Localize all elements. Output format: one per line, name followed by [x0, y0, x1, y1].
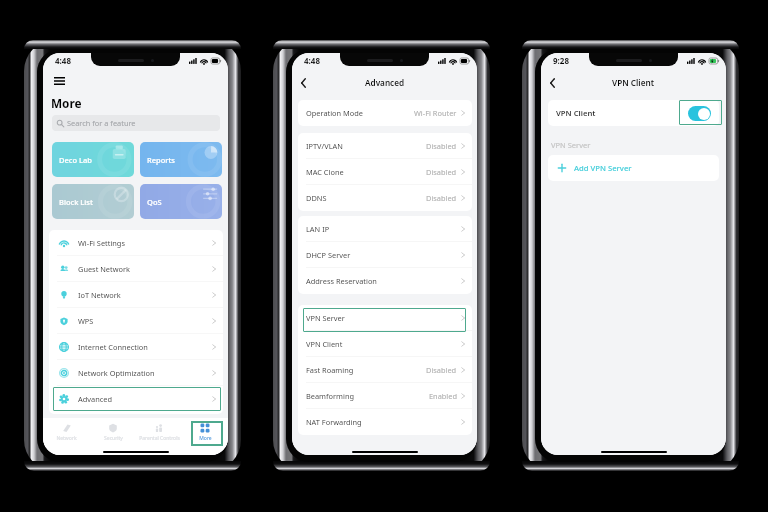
- staticText: DDNS: [306, 193, 327, 203]
- button[interactable]: DHCP Server: [298, 242, 472, 268]
- staticText: Advanced: [78, 394, 112, 404]
- staticText: 4:48: [55, 55, 71, 66]
- button[interactable]: IoT Network: [49, 282, 223, 308]
- staticText: Disabled: [426, 167, 457, 177]
- staticText: MAC Clone: [306, 167, 344, 177]
- button[interactable]: Network Optimization: [49, 360, 223, 386]
- staticText: NAT Forwarding: [306, 417, 362, 427]
- button[interactable]: Fast Roaming: [298, 357, 472, 383]
- button[interactable]: Security: [90, 418, 136, 446]
- staticText: Disabled: [426, 141, 457, 151]
- button[interactable]: Network: [43, 418, 90, 446]
- staticText: Advanced: [365, 77, 405, 88]
- staticText: Security: [104, 435, 123, 442]
- staticText: WPS: [78, 316, 94, 326]
- staticText: VPN Server: [306, 313, 345, 323]
- staticText: Operation Mode: [306, 108, 363, 118]
- button[interactable]: VPN Client toggle: [688, 106, 711, 121]
- staticText: Network Optimization: [78, 368, 155, 378]
- button[interactable]: LAN IP: [298, 216, 472, 242]
- staticText: Address Reservation: [306, 276, 377, 286]
- staticText: Disabled: [426, 193, 457, 203]
- staticText: More: [199, 435, 212, 442]
- button[interactable]: VPN Server: [298, 305, 472, 331]
- button[interactable]: Beamforming: [298, 383, 472, 409]
- button[interactable]: DDNS: [298, 185, 472, 211]
- staticText: QoS: [147, 197, 162, 207]
- button[interactable]: Deco Lab: [52, 142, 134, 177]
- button[interactable]: IPTV/VLAN: [298, 133, 472, 159]
- staticText: VPN Client: [306, 339, 343, 349]
- staticText: Network: [56, 435, 77, 442]
- staticText: Enabled: [429, 391, 457, 401]
- staticText: Disabled: [426, 365, 457, 375]
- button[interactable]: Internet Connection: [49, 334, 223, 360]
- staticText: Reports: [147, 155, 175, 165]
- button[interactable]: Back: [546, 76, 559, 89]
- button[interactable]: Operation Mode: [298, 100, 472, 126]
- button[interactable]: NAT Forwarding: [298, 409, 472, 435]
- staticText: Parental Controls: [139, 435, 180, 442]
- staticText: Beamforming: [306, 391, 355, 401]
- button[interactable]: More: [182, 418, 228, 446]
- button[interactable]: Search for a feature: [52, 115, 220, 131]
- staticText: VPN Client: [556, 108, 596, 118]
- staticText: Guest Network: [78, 264, 130, 274]
- button[interactable]: Add VPN Server: [548, 155, 719, 181]
- staticText: Wi-Fi Router: [414, 108, 457, 118]
- staticText: More: [51, 95, 82, 111]
- staticText: Internet Connection: [78, 342, 148, 352]
- staticText: Wi-Fi Settings: [78, 238, 125, 248]
- staticText: 4:48: [304, 55, 320, 66]
- button[interactable]: Parental Controls: [136, 418, 182, 446]
- button[interactable]: Menu: [52, 74, 66, 88]
- button[interactable]: Guest Network: [49, 256, 223, 282]
- staticText: Add VPN Server: [574, 163, 632, 173]
- staticText: Deco Lab: [59, 155, 92, 165]
- staticText: Search for a feature: [67, 118, 136, 128]
- button[interactable]: QoS: [140, 184, 222, 219]
- button[interactable]: Block List: [52, 184, 134, 219]
- staticText: IoT Network: [78, 290, 121, 300]
- button[interactable]: VPN Client: [298, 331, 472, 357]
- staticText: 9:28: [553, 55, 569, 66]
- staticText: Block List: [59, 197, 93, 207]
- staticText: VPN Server: [551, 140, 591, 150]
- button[interactable]: Reports: [140, 142, 222, 177]
- button[interactable]: Wi-Fi Settings: [49, 230, 223, 256]
- staticText: VPN Client: [612, 77, 655, 88]
- staticText: DHCP Server: [306, 250, 351, 260]
- staticText: Fast Roaming: [306, 365, 354, 375]
- button[interactable]: WPS: [49, 308, 223, 334]
- button[interactable]: Back: [297, 76, 310, 89]
- button[interactable]: MAC Clone: [298, 159, 472, 185]
- staticText: IPTV/VLAN: [306, 141, 343, 151]
- staticText: LAN IP: [306, 224, 330, 234]
- button[interactable]: Address Reservation: [298, 268, 472, 294]
- button[interactable]: Advanced: [49, 386, 223, 412]
